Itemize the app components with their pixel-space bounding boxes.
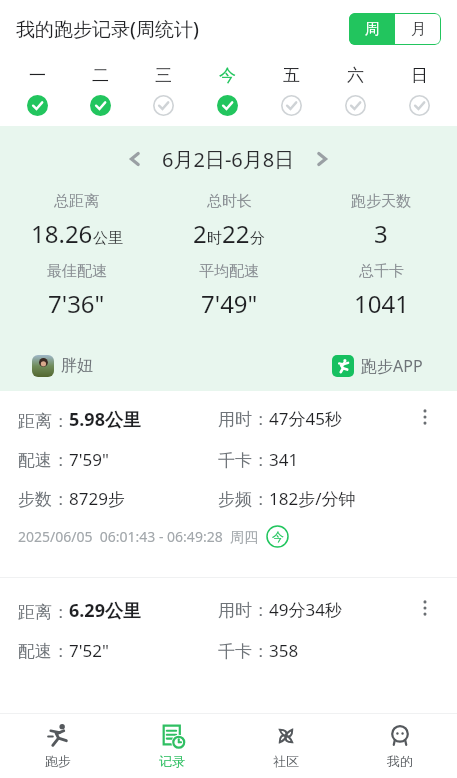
staticText: 社区	[273, 753, 299, 769]
button[interactable]: 周	[349, 13, 395, 45]
button[interactable]: 三	[132, 58, 195, 126]
staticText: 182步/分钟	[269, 487, 356, 510]
button[interactable]: 二	[69, 58, 132, 126]
button[interactable]: 距离	[0, 578, 457, 662]
button[interactable]: 跑步APP	[332, 355, 423, 377]
staticText: 6月2日-6月8日	[162, 146, 295, 173]
staticText: 距离	[18, 602, 52, 623]
button[interactable]: 五	[259, 58, 323, 126]
staticText: 月	[411, 20, 426, 39]
staticText: 1041	[354, 287, 409, 320]
button[interactable]: 胖妞	[32, 355, 93, 377]
staticText: 47分45秒	[269, 407, 342, 430]
staticText: 22	[222, 217, 250, 250]
staticText: 时	[207, 229, 222, 248]
staticText: 用时	[218, 600, 252, 621]
button[interactable]: 距离	[0, 391, 457, 577]
staticText: 总千卡	[359, 262, 404, 281]
staticText: 二	[92, 65, 109, 86]
staticText: 我的跑步记录(周统计)	[16, 16, 199, 42]
staticText: ：	[52, 489, 69, 510]
staticText: 日	[411, 65, 428, 86]
staticText: 今	[219, 65, 236, 86]
button[interactable]: 月	[395, 13, 441, 45]
button[interactable]: 日	[387, 58, 451, 126]
staticText: ：	[252, 409, 269, 430]
staticText: 步频	[218, 489, 252, 510]
staticText: 配速	[18, 641, 52, 662]
staticText: 胖妞	[61, 356, 93, 376]
button[interactable]: 跑步	[0, 714, 115, 778]
button[interactable]: 记录	[115, 714, 229, 778]
staticText: 7'52"	[69, 639, 109, 662]
staticText: 2	[193, 217, 207, 250]
staticText: 周	[365, 20, 380, 39]
staticText: ：	[52, 602, 69, 623]
staticText: 一	[29, 65, 46, 86]
staticText: 记录	[159, 753, 185, 769]
staticText: ：	[252, 489, 269, 510]
staticText: 跑步APP	[361, 355, 423, 377]
staticText: 49分34秒	[269, 598, 342, 621]
button[interactable]: 六	[323, 58, 387, 126]
staticText: ：	[52, 641, 69, 662]
button[interactable]: Previous week	[118, 142, 152, 176]
staticText: 配速	[18, 450, 52, 471]
button[interactable]: Next week	[305, 142, 339, 176]
staticText: 5.98	[69, 407, 105, 432]
staticText: ：	[252, 641, 269, 662]
staticText: 公里	[105, 409, 141, 432]
staticText: 7'36"	[48, 287, 105, 320]
button[interactable]: More options	[407, 399, 443, 435]
staticText: 三	[155, 65, 172, 86]
button[interactable]: 我的	[343, 714, 457, 778]
button[interactable]: 今	[195, 58, 259, 126]
staticText: 千卡	[218, 641, 252, 662]
staticText: ：	[252, 450, 269, 471]
staticText: 7'59"	[69, 448, 109, 471]
staticText: 我的	[387, 753, 413, 769]
staticText: 六	[347, 65, 364, 86]
staticText: 公里	[105, 600, 141, 623]
staticText: 跑步	[45, 753, 71, 769]
staticText: 最佳配速	[47, 262, 107, 281]
staticText: 8729步	[69, 487, 125, 510]
staticText: 总时长	[207, 192, 252, 211]
staticText: 步数	[18, 489, 52, 510]
staticText: 跑步天数	[351, 192, 411, 211]
staticText: 用时	[218, 409, 252, 430]
staticText: 341	[269, 448, 299, 471]
staticText: ：	[52, 411, 69, 432]
staticText: 分	[250, 229, 265, 248]
staticText: 2025/06/05 06:01:43 - 06:49:28 周四	[18, 527, 258, 546]
staticText: ：	[252, 600, 269, 621]
staticText: 18.26	[31, 217, 93, 250]
staticText: 距离	[18, 411, 52, 432]
staticText: 6.29	[69, 598, 105, 623]
staticText: 3	[374, 217, 388, 250]
button[interactable]: 社区	[229, 714, 343, 778]
staticText: 7'49"	[201, 287, 258, 320]
staticText: 358	[269, 639, 299, 662]
staticText: 今	[272, 529, 284, 544]
staticText: 千卡	[218, 450, 252, 471]
staticText: 五	[283, 65, 300, 86]
staticText: 公里	[93, 229, 123, 248]
staticText: ：	[52, 450, 69, 471]
button[interactable]: More options	[407, 590, 443, 626]
staticText: 平均配速	[199, 262, 259, 281]
button[interactable]: 一	[6, 58, 69, 126]
staticText: 总距离	[54, 192, 99, 211]
